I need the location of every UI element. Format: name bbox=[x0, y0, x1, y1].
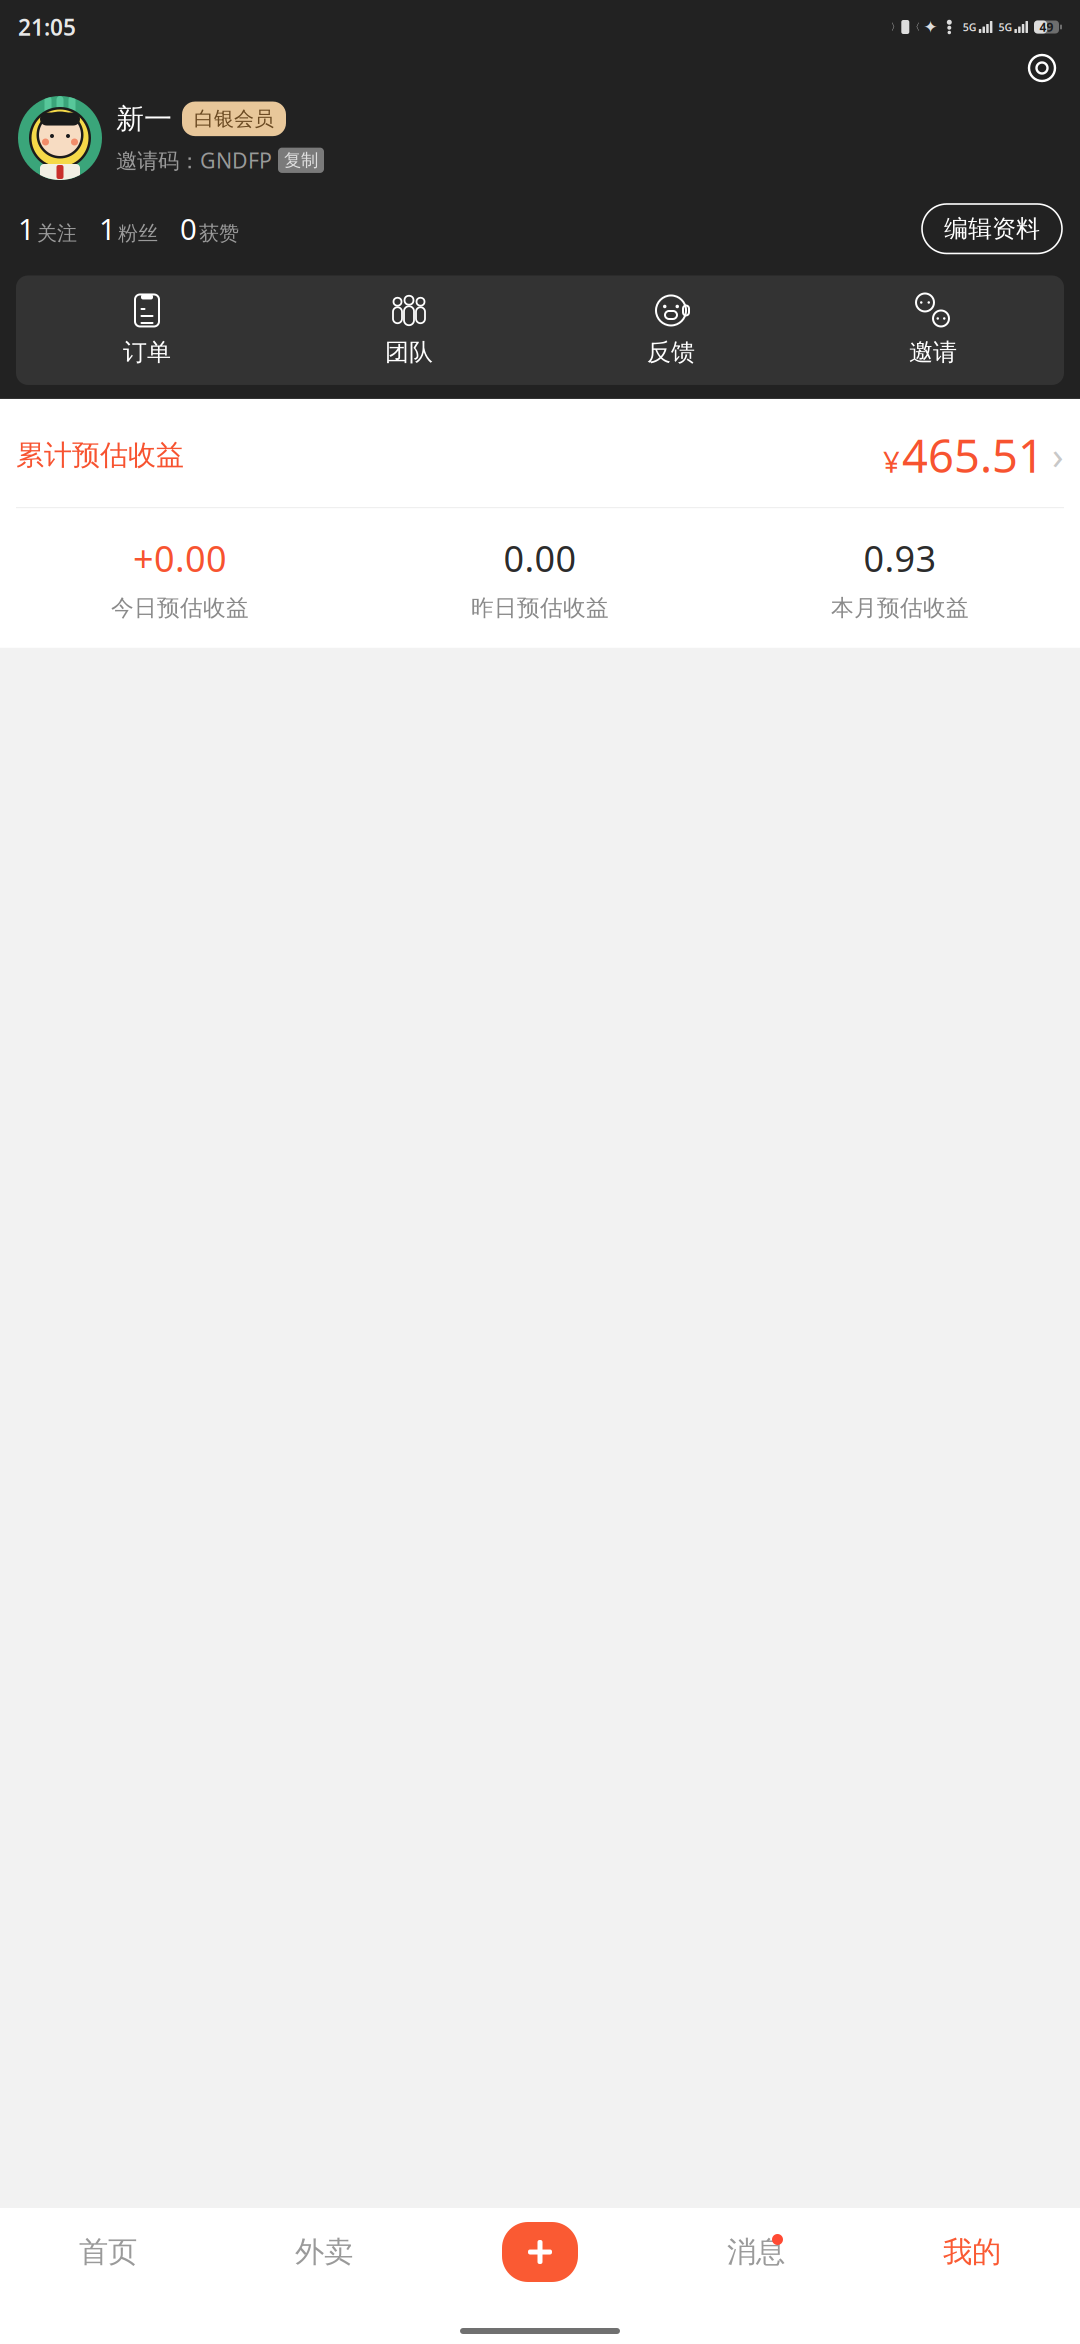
button[interactable]: 复制 bbox=[278, 148, 324, 173]
button[interactable]: 0 bbox=[180, 209, 239, 248]
staticText: +0.00 bbox=[133, 534, 227, 582]
staticText: 5G bbox=[963, 20, 977, 34]
staticText: 0 bbox=[180, 209, 197, 248]
staticText: 编辑资料 bbox=[944, 214, 1040, 243]
staticText: 465.51 bbox=[902, 425, 1044, 485]
button[interactable]: 邀请 bbox=[802, 293, 1064, 367]
button[interactable]: 首页 bbox=[0, 2226, 216, 2278]
staticText: 白银会员 bbox=[194, 107, 274, 131]
staticText: 1 bbox=[99, 209, 116, 248]
staticText: 粉丝 bbox=[118, 221, 158, 246]
button[interactable]: 外卖 bbox=[216, 2226, 432, 2278]
button[interactable]: 订单 bbox=[16, 293, 278, 367]
button[interactable]: 0.00 bbox=[360, 534, 720, 622]
staticText: 0.00 bbox=[503, 534, 576, 582]
staticText: 〉 bbox=[891, 21, 900, 33]
staticText: 〈 bbox=[911, 21, 920, 33]
staticText: 今日预估收益 bbox=[111, 594, 249, 622]
button[interactable]: 设置 bbox=[1020, 46, 1064, 90]
staticText: 49 bbox=[1039, 19, 1053, 35]
staticText: 21:05 bbox=[18, 12, 76, 42]
staticText: ¥ bbox=[883, 442, 900, 481]
staticText: 订单 bbox=[123, 337, 171, 367]
staticText: 0.93 bbox=[863, 534, 936, 582]
button[interactable]: 反馈 bbox=[540, 293, 802, 367]
button[interactable]: 消息 bbox=[648, 2226, 864, 2278]
staticText: 获赞 bbox=[199, 221, 239, 246]
button[interactable]: 累计预估收益 bbox=[0, 399, 1080, 507]
button[interactable]: 我的 bbox=[864, 2226, 1080, 2278]
staticText: 首页 bbox=[79, 2234, 137, 2270]
staticText: 5G bbox=[998, 20, 1012, 34]
staticText: 昨日预估收益 bbox=[471, 594, 609, 622]
staticText: 本月预估收益 bbox=[831, 594, 969, 622]
button[interactable]: 0.93 bbox=[720, 534, 1080, 622]
staticText: 外卖 bbox=[295, 2234, 353, 2270]
staticText: 累计预估收益 bbox=[16, 438, 184, 472]
button[interactable]: +0.00 bbox=[0, 534, 360, 622]
staticText: 新一 bbox=[116, 102, 172, 136]
staticText: 消息 bbox=[727, 2234, 785, 2270]
staticText: 邀请 bbox=[909, 337, 957, 367]
staticText: 邀请码：GNDFP bbox=[116, 146, 272, 174]
staticText: 团队 bbox=[385, 337, 433, 367]
button[interactable]: 团队 bbox=[278, 293, 540, 367]
staticText: 反馈 bbox=[647, 337, 695, 367]
button[interactable]: 发布 bbox=[432, 2222, 648, 2282]
button[interactable]: 1 bbox=[18, 209, 77, 248]
staticText: 关注 bbox=[37, 221, 77, 246]
staticText: 1 bbox=[18, 209, 35, 248]
staticText: 复制 bbox=[284, 150, 318, 171]
staticText: › bbox=[1052, 430, 1064, 480]
button[interactable]: 1 bbox=[99, 209, 158, 248]
staticText: ✦ bbox=[923, 17, 938, 37]
button[interactable]: 编辑资料 bbox=[922, 204, 1062, 253]
staticText: 我的 bbox=[943, 2234, 1001, 2270]
